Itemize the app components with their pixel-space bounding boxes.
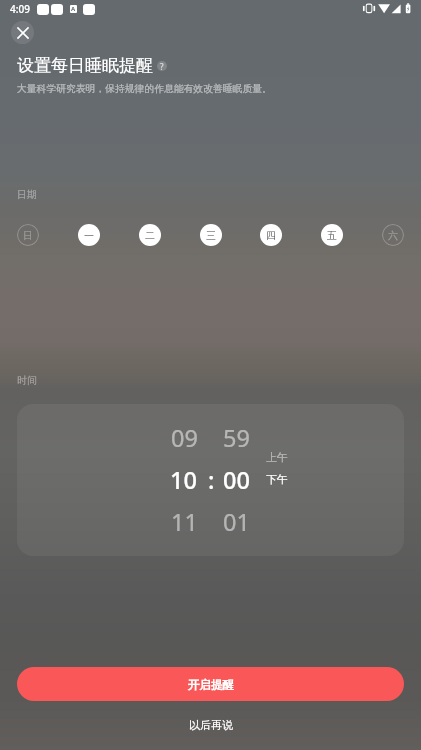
staticText: 10 (170, 464, 197, 496)
button[interactable]: 一 (78, 224, 100, 246)
staticText: 一 (84, 229, 94, 242)
staticText: 二 (145, 229, 155, 242)
button[interactable]: 以后再说 (0, 710, 421, 739)
staticText: 01 (223, 506, 250, 538)
button[interactable]: 关闭 (11, 21, 34, 44)
button[interactable]: 二 (139, 224, 161, 246)
staticText: 09 (171, 422, 198, 454)
staticText: : (208, 464, 215, 496)
staticText: A (71, 5, 76, 13)
staticText: 时间 (17, 374, 37, 387)
staticText: 日期 (17, 188, 37, 201)
button[interactable]: 帮助 (157, 61, 167, 71)
staticText: 五 (327, 229, 337, 242)
staticText: 上午 (266, 451, 288, 465)
staticText: 4:09 (10, 2, 30, 16)
staticText: 开启提醒 (188, 678, 234, 692)
button[interactable]: 四 (260, 224, 282, 246)
staticText: 设置每日睡眠提醒 (17, 55, 153, 76)
staticText: 四 (266, 229, 276, 242)
staticText: 六 (388, 229, 398, 242)
staticText: 11 (171, 506, 198, 538)
staticText: 00 (223, 464, 250, 496)
staticText: 三 (206, 229, 216, 242)
staticText: 下午 (266, 473, 288, 487)
staticText: 以后再说 (189, 718, 233, 732)
staticText: ? (160, 61, 164, 71)
button[interactable]: 六 (382, 224, 404, 246)
button[interactable]: 日 (17, 224, 39, 246)
button[interactable]: 五 (321, 224, 343, 246)
staticText: 日 (23, 229, 33, 242)
staticText: 大量科学研究表明，保持规律的作息能有效改善睡眠质量。 (17, 83, 272, 95)
button[interactable]: 三 (200, 224, 222, 246)
staticText: 59 (223, 422, 250, 454)
button[interactable]: 开启提醒 (17, 667, 404, 701)
